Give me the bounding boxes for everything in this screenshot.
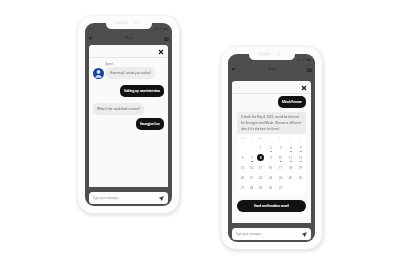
button[interactable]: 6 [239, 154, 246, 161]
staticText: 16 [269, 166, 272, 170]
button[interactable]: Setting up new interview [120, 85, 164, 97]
staticText: 6 [242, 156, 244, 160]
button[interactable]: 7 [248, 154, 255, 161]
staticText: 9:41 [232, 58, 237, 61]
staticText: 22 [259, 176, 262, 180]
button[interactable]: Type your message... [232, 228, 311, 240]
staticText: 1 [260, 146, 262, 150]
staticText: T [251, 137, 253, 140]
button[interactable]: 11 [287, 154, 294, 161]
button[interactable]: How may I assist you today? [106, 67, 155, 79]
staticText: 5 [300, 146, 302, 150]
button[interactable]: Send confirmation email [237, 200, 306, 212]
staticText: Micah Fenner [282, 100, 302, 104]
staticText: 15 [259, 166, 262, 170]
staticText: T [269, 137, 271, 140]
staticText: Setting up new interview [124, 89, 160, 93]
staticText: 21 [250, 176, 253, 180]
button[interactable]: 28 [248, 184, 255, 191]
button[interactable]: 27 [239, 184, 246, 191]
staticText: 3 [280, 146, 282, 150]
staticText: 4 [290, 146, 292, 150]
button[interactable]: 30 [267, 184, 274, 191]
staticText: 30 [269, 186, 272, 190]
staticText: 9:41 [89, 27, 94, 30]
button[interactable]: 24 [277, 174, 284, 181]
staticText: 13 [241, 166, 244, 170]
button[interactable]: Seungjoo Lee [136, 118, 164, 130]
other: Send [302, 232, 307, 237]
staticText: 11 [289, 156, 292, 160]
staticText: 23 [269, 176, 272, 180]
staticText: 24 [279, 176, 282, 180]
button[interactable]: 2 [267, 144, 274, 151]
staticText: 27 [241, 186, 244, 190]
staticText: 26 [299, 176, 302, 180]
button[interactable]: 19 [297, 164, 304, 171]
other: Send [159, 196, 164, 201]
button[interactable]: Menu [87, 35, 94, 42]
staticText: 8 [260, 156, 262, 160]
button[interactable]: 17 [277, 164, 284, 171]
staticText: S [289, 137, 291, 140]
button[interactable]: 18 [287, 164, 294, 171]
staticText: 25 [289, 176, 292, 180]
button[interactable]: 10 [277, 154, 284, 161]
button[interactable]: Micah Fenner [278, 96, 306, 108]
staticText: 28 [250, 186, 253, 190]
button[interactable]: 16 [267, 164, 274, 171]
staticText: 17 [279, 166, 282, 170]
staticText: 10 [279, 156, 282, 160]
button[interactable]: Menu [230, 66, 237, 73]
staticText: F [279, 137, 281, 140]
button[interactable]: Close [157, 48, 164, 55]
staticText: Type your message... [236, 232, 302, 236]
button[interactable]: 15 [257, 164, 264, 171]
staticText: 29 [259, 186, 262, 190]
button[interactable]: 20 [239, 174, 246, 181]
staticText: Send confirmation email [254, 204, 289, 208]
staticText: M [242, 137, 244, 140]
button[interactable]: 23 [267, 174, 274, 181]
button[interactable]: 8 [257, 154, 264, 161]
staticText: 20 [241, 176, 244, 180]
button[interactable]: 31 [277, 184, 284, 191]
staticText: 19 [299, 166, 302, 170]
staticText: 7 [251, 156, 253, 160]
button[interactable]: 25 [287, 174, 294, 181]
staticText: May [125, 35, 133, 40]
staticText: S [299, 137, 301, 140]
staticText: Type your message... [93, 196, 159, 200]
staticText: 12 [299, 156, 302, 160]
staticText: How may I assist you today? [110, 71, 151, 75]
button[interactable]: 9 [267, 154, 274, 161]
button[interactable]: 3 [277, 144, 284, 151]
staticText: Agent [105, 62, 113, 66]
button[interactable]: 14 [248, 164, 255, 171]
staticText: 14 [250, 166, 253, 170]
button[interactable]: 5 [297, 144, 304, 151]
button[interactable]: 13 [239, 164, 246, 171]
staticText: 31 [279, 186, 282, 190]
button[interactable]: 21 [248, 174, 255, 181]
staticText: May [268, 66, 276, 71]
staticText: 18 [289, 166, 292, 170]
button[interactable]: Calendar [306, 66, 313, 73]
button[interactable]: 4 [287, 144, 294, 151]
button[interactable]: 1 [257, 144, 264, 151]
button[interactable]: Calendar [163, 35, 170, 42]
staticText: 2 [270, 146, 272, 150]
button[interactable]: Close [300, 84, 307, 91]
staticText: What's the candidate's name? [97, 107, 140, 111]
button[interactable]: 29 [257, 184, 264, 191]
button[interactable]: 26 [297, 174, 304, 181]
button[interactable]: 22 [257, 174, 264, 181]
staticText: It looks like May 8, 2025, would be the … [241, 115, 302, 131]
staticText: 9 [270, 156, 272, 160]
button[interactable]: Type your message... [89, 192, 168, 204]
button[interactable]: 12 [297, 154, 304, 161]
button[interactable]: What's the candidate's name? [93, 103, 144, 115]
staticText: W [259, 137, 262, 140]
staticText: Seungjoo Lee [140, 122, 160, 126]
